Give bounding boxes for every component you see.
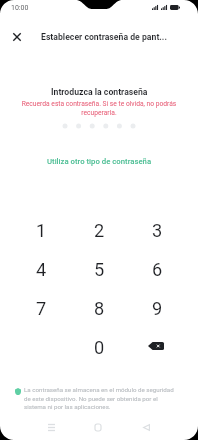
button[interactable]: Backspace: [139, 329, 175, 365]
staticText: Utiliza otro tipo de contraseña: [47, 157, 152, 166]
staticText: Establecer contraseña de pant...: [41, 32, 167, 42]
button[interactable]: Utiliza otro tipo de contraseña: [39, 152, 160, 171]
staticText: 5: [94, 259, 105, 280]
staticText: 8: [94, 298, 105, 319]
staticText: 4: [36, 259, 47, 280]
button[interactable]: 2: [81, 212, 117, 248]
staticText: 6: [152, 259, 163, 280]
staticText: 1: [36, 220, 47, 241]
staticText: 9: [152, 298, 163, 319]
button[interactable]: 6: [139, 251, 175, 287]
staticText: La contraseña se almacena en el módulo d…: [24, 386, 178, 410]
button[interactable]: Back: [131, 412, 161, 440]
button[interactable]: 7: [23, 290, 59, 326]
staticText: 10:00: [11, 4, 29, 12]
button[interactable]: Close: [5, 25, 29, 49]
button[interactable]: 4: [23, 251, 59, 287]
button[interactable]: 0: [81, 329, 117, 365]
staticText: 2: [94, 220, 105, 241]
button[interactable]: Home: [83, 412, 113, 440]
staticText: 0: [94, 337, 105, 358]
button[interactable]: 9: [139, 290, 175, 326]
staticText: 3: [152, 220, 163, 241]
staticText: Recuerda esta contraseña. Si se te olvid…: [18, 100, 180, 117]
staticText: Introduzca la contraseña: [51, 87, 148, 97]
staticText: 7: [36, 298, 47, 319]
button[interactable]: 5: [81, 251, 117, 287]
button[interactable]: 3: [139, 212, 175, 248]
button[interactable]: 1: [23, 212, 59, 248]
button[interactable]: Recents: [36, 412, 66, 440]
button[interactable]: 8: [81, 290, 117, 326]
